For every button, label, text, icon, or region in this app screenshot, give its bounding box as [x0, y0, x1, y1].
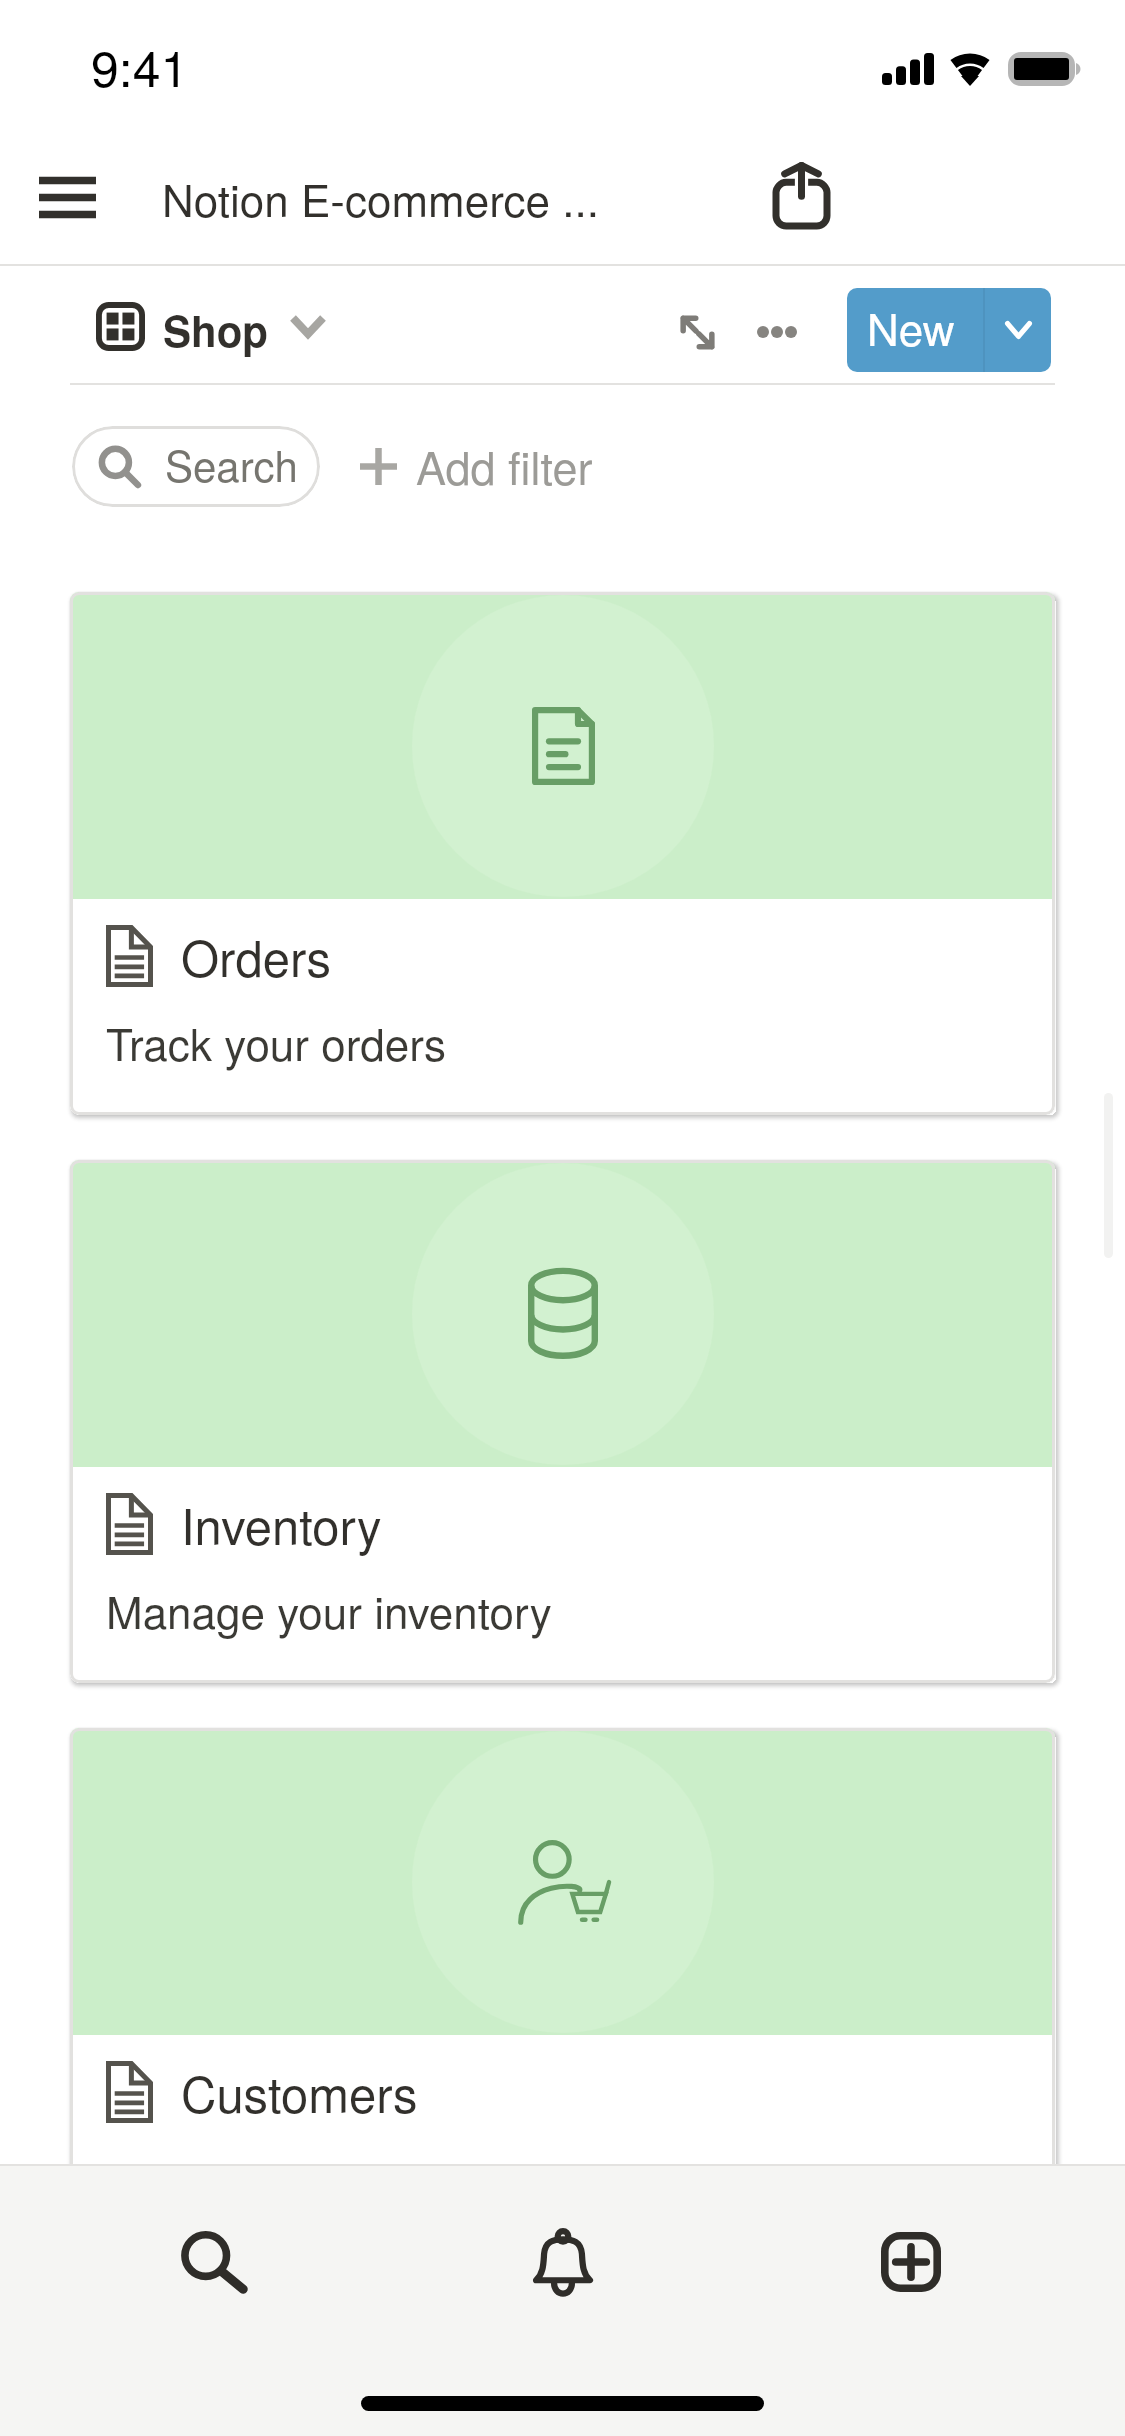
button[interactable]: Share	[751, 144, 851, 244]
button[interactable]: Orders	[70, 592, 1055, 1115]
button[interactable]: New	[847, 288, 983, 372]
button[interactable]: Customers	[70, 1728, 1055, 2251]
staticText: Customers	[181, 2057, 418, 2127]
staticText: Inventory	[181, 1489, 382, 1559]
staticText: Track your orders	[106, 1010, 447, 1073]
staticText: Add filter	[416, 433, 593, 497]
button[interactable]: Menu	[14, 150, 120, 244]
button[interactable]: Search	[40, 2166, 389, 2360]
button[interactable]: Expand	[657, 292, 737, 372]
button[interactable]: Add filter	[350, 426, 602, 507]
button[interactable]: More options	[737, 292, 817, 372]
staticText: Orders	[181, 921, 331, 991]
button[interactable]: Notifications	[389, 2166, 737, 2360]
button[interactable]: Search	[72, 426, 320, 507]
button[interactable]: Shop	[78, 282, 344, 370]
staticText: 9:41	[91, 30, 189, 102]
staticText: Manage your inventory	[106, 1578, 552, 1641]
button[interactable]: Create new	[737, 2166, 1085, 2360]
button[interactable]: New options	[985, 288, 1051, 372]
staticText: Manage your customers	[106, 2146, 577, 2209]
staticText: Notion E-commerce ...	[162, 166, 600, 229]
button[interactable]: Inventory	[70, 1160, 1055, 1683]
staticText: Search	[165, 434, 298, 494]
staticText: New	[867, 295, 955, 358]
staticText: Shop	[163, 300, 269, 360]
